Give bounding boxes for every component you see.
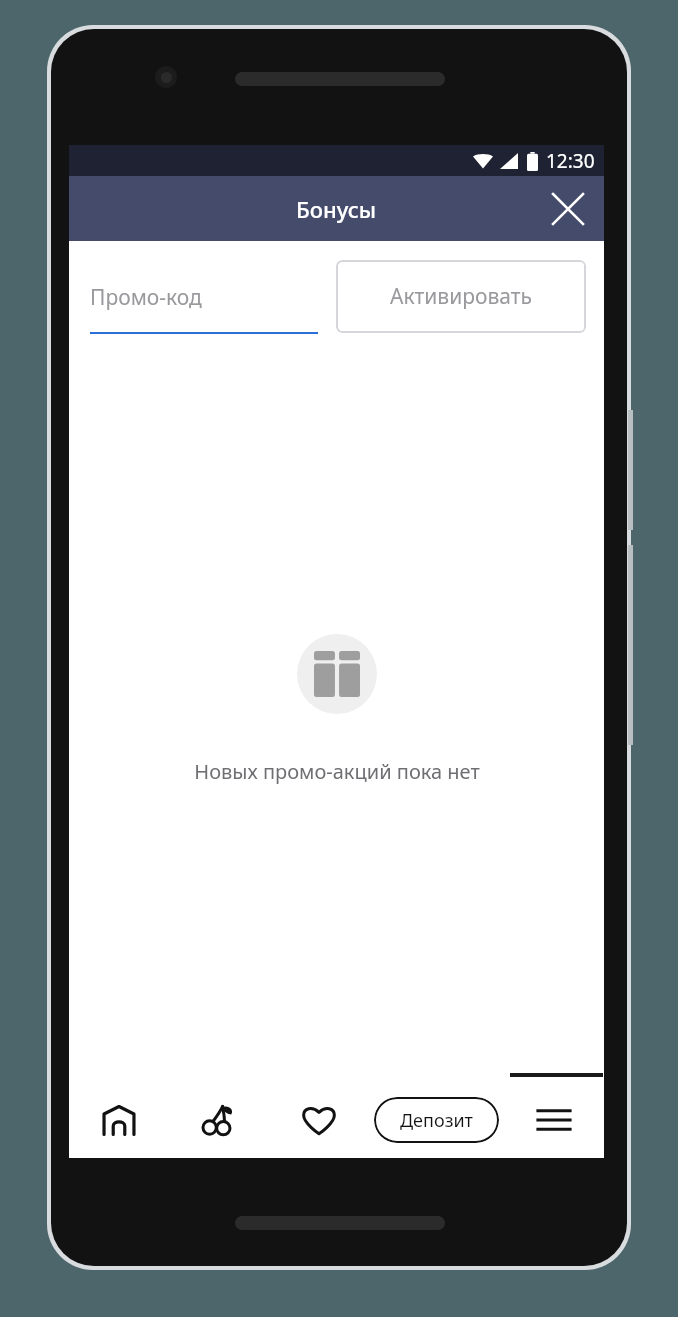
- staticText: Активировать: [390, 282, 533, 311]
- button[interactable]: Промо-код: [90, 259, 318, 334]
- staticText: 12:30: [546, 148, 595, 174]
- button[interactable]: Home: [69, 1082, 169, 1158]
- button[interactable]: Close: [542, 183, 594, 235]
- staticText: Бонусы: [296, 194, 377, 224]
- button[interactable]: Активировать: [336, 260, 586, 333]
- button[interactable]: Games: [169, 1082, 269, 1158]
- staticText: Промо-код: [90, 283, 202, 312]
- staticText: Депозит: [400, 1108, 473, 1133]
- button[interactable]: Favorites: [269, 1082, 369, 1158]
- staticText: Новых промо-акций пока нет: [194, 758, 480, 785]
- button[interactable]: Menu: [504, 1082, 604, 1158]
- button[interactable]: Депозит: [374, 1097, 499, 1143]
